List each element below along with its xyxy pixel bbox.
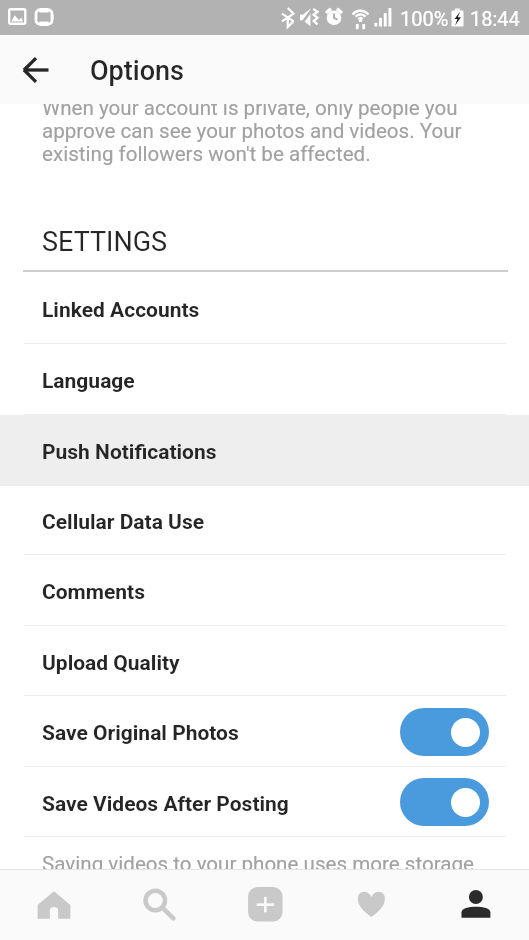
staticText: Saving videos to your phone uses more st… <box>42 852 474 869</box>
staticText: Save Videos After Posting <box>42 792 289 817</box>
staticText: Save Original Photos <box>42 721 239 746</box>
staticText: 100% <box>400 7 449 30</box>
button[interactable]: Save Videos After Posting <box>400 778 489 826</box>
staticText: 18:44 <box>470 7 520 30</box>
staticText: Linked Accounts <box>42 298 200 323</box>
button[interactable]: Activity <box>318 870 423 940</box>
button[interactable]: Push Notifications <box>0 415 529 486</box>
button[interactable]: Search <box>106 870 211 940</box>
button[interactable]: Home <box>1 870 106 940</box>
button[interactable]: Back <box>10 44 62 96</box>
button[interactable]: Cellular Data Use <box>0 486 529 555</box>
button[interactable]: Save Videos After Posting <box>0 767 529 837</box>
staticText: Push Notifications <box>42 440 217 465</box>
button[interactable]: New post <box>212 870 317 940</box>
staticText: Language <box>42 369 135 394</box>
staticText: When your account is private, only peopl… <box>42 104 474 165</box>
staticText: Upload Quality <box>42 651 180 676</box>
button[interactable]: Comments <box>0 555 529 626</box>
staticText: Cellular Data Use <box>42 510 205 535</box>
button[interactable]: Language <box>0 344 529 415</box>
button[interactable]: Linked Accounts <box>0 272 529 344</box>
button[interactable]: Save Original Photos <box>0 696 529 767</box>
staticText: Comments <box>42 580 145 605</box>
button[interactable]: Save Original Photos <box>400 708 489 756</box>
button[interactable]: Profile <box>423 870 528 940</box>
button[interactable]: Upload Quality <box>0 626 529 696</box>
staticText: SETTINGS <box>42 226 168 258</box>
staticText: Options <box>90 55 184 87</box>
